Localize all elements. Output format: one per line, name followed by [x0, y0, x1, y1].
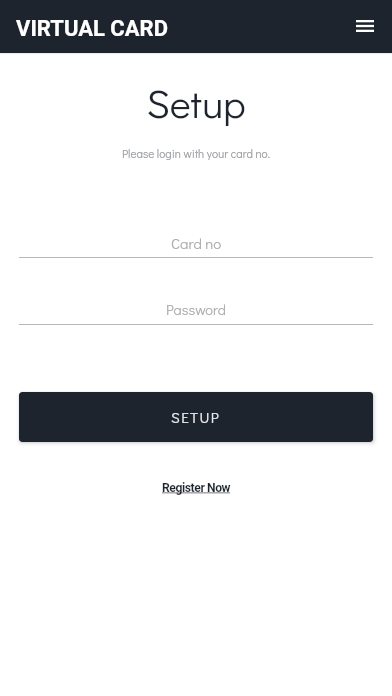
button[interactable]: Register Now — [156, 478, 237, 498]
staticText: Password — [166, 300, 226, 319]
staticText: Register Now — [162, 481, 231, 495]
button[interactable]: Password — [19, 297, 373, 322]
staticText: Please login with your card no. — [0, 146, 392, 161]
button[interactable]: Card no — [19, 230, 373, 255]
button[interactable]: SETUP — [19, 392, 373, 442]
staticText: SETUP — [171, 407, 221, 427]
staticText: Card no — [171, 233, 222, 253]
staticText: Setup — [0, 76, 392, 128]
staticText: VIRTUAL CARD — [16, 16, 168, 42]
button[interactable]: Open navigation menu — [345, 6, 385, 46]
